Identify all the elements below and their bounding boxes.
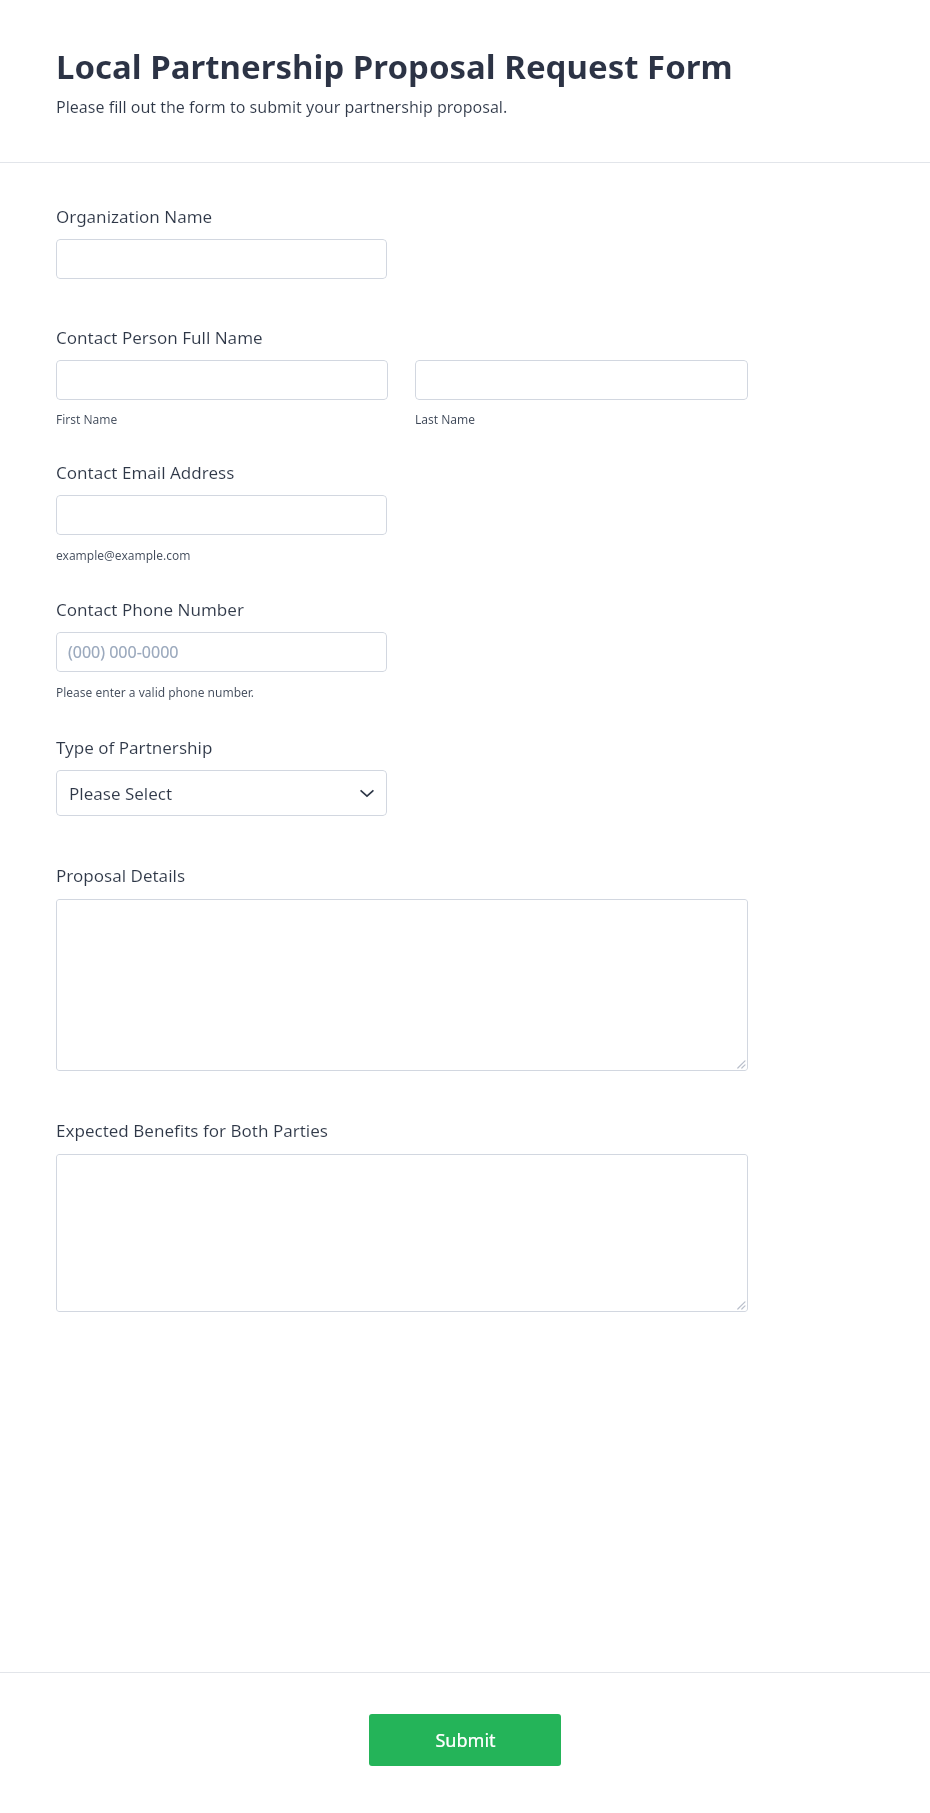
staticText: Please Select — [69, 782, 173, 805]
staticText: Proposal Details — [56, 864, 186, 887]
button[interactable]: Contact Email Address — [56, 495, 387, 535]
button[interactable]: Contact Phone Number — [56, 632, 387, 672]
staticText: Contact Email Address — [56, 461, 235, 484]
staticText: example@example.com — [56, 547, 191, 563]
button[interactable]: Last Name — [415, 360, 748, 400]
staticText: Contact Person Full Name — [56, 326, 263, 349]
staticText: Organization Name — [56, 205, 213, 228]
staticText: Please enter a valid phone number. — [56, 684, 255, 700]
button[interactable]: Submit — [369, 1714, 561, 1766]
button[interactable]: Proposal Details — [56, 899, 748, 1071]
other: Open dropdown — [360, 786, 374, 800]
staticText: Contact Phone Number — [56, 598, 244, 621]
button[interactable]: Please Select — [56, 770, 387, 816]
staticText: Expected Benefits for Both Parties — [56, 1119, 328, 1142]
staticText: Local Partnership Proposal Request Form — [56, 44, 733, 89]
staticText: Last Name — [415, 411, 476, 427]
staticText: Submit — [435, 1728, 496, 1753]
staticText: Type of Partnership — [56, 736, 213, 759]
button[interactable]: First Name — [56, 360, 388, 400]
button[interactable]: Expected Benefits for Both Parties — [56, 1154, 748, 1312]
staticText: First Name — [56, 411, 118, 427]
staticText: Please fill out the form to submit your … — [56, 96, 508, 118]
button[interactable]: Organization Name — [56, 239, 387, 279]
staticText: (000) 000-0000 — [68, 641, 179, 663]
